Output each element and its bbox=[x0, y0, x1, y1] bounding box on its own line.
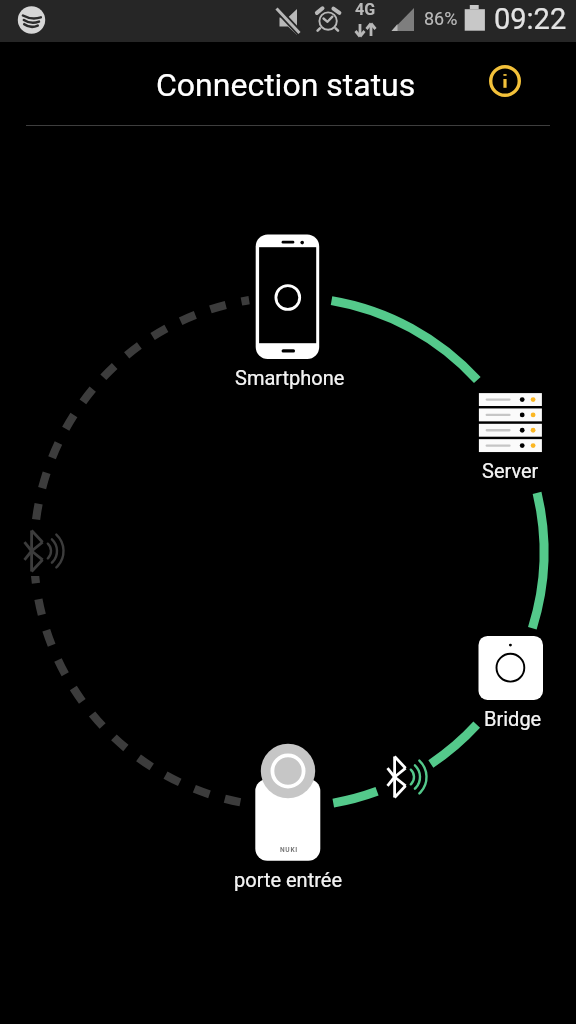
staticText: Server bbox=[482, 459, 539, 482]
staticText: Smartphone bbox=[235, 366, 345, 389]
staticText: Connection status bbox=[156, 66, 416, 104]
staticText: NUKI bbox=[280, 846, 298, 854]
staticText: Bridge bbox=[484, 707, 542, 730]
staticText: 09:22 bbox=[494, 2, 567, 36]
staticText: 86% bbox=[424, 8, 458, 29]
button[interactable]: Info bbox=[481, 57, 529, 105]
staticText: 4G bbox=[355, 0, 376, 19]
staticText: porte entrée bbox=[234, 868, 343, 891]
